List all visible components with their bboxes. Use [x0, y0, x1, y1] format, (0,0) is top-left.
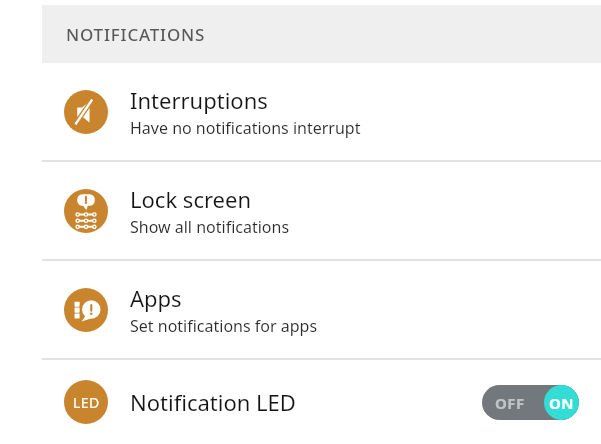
button[interactable]: Interruptions	[42, 63, 601, 160]
button[interactable]: Apps	[42, 261, 601, 358]
staticText: LED	[73, 393, 100, 412]
staticText: Set notifications for apps	[130, 315, 318, 337]
staticText: Have no notifications interrupt	[130, 117, 361, 139]
staticText: Interruptions	[130, 85, 268, 115]
other: Lock screen	[64, 189, 108, 233]
button[interactable]: Notification LED	[42, 360, 601, 444]
other: Notification LED	[64, 380, 108, 424]
staticText: Apps	[130, 283, 182, 313]
staticText: ON	[549, 393, 575, 413]
staticText: Show all notifications	[130, 216, 290, 238]
staticText: Notification LED	[130, 387, 296, 417]
staticText: Lock screen	[130, 184, 252, 214]
button[interactable]: Lock screen	[42, 162, 601, 259]
other: Apps	[64, 288, 108, 332]
other: Interruptions	[64, 90, 108, 134]
staticText: OFF	[495, 393, 525, 413]
button[interactable]: Notification LED toggle, on	[482, 385, 579, 420]
staticText: NOTIFICATIONS	[66, 23, 206, 46]
